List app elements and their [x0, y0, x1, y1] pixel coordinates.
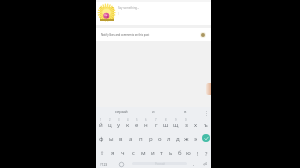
button[interactable]: ю [184, 145, 193, 159]
staticText: й [99, 121, 103, 129]
button[interactable]: 5 [132, 117, 141, 131]
button[interactable]: р [146, 131, 155, 145]
button[interactable]: о [155, 131, 164, 145]
staticText: п [139, 135, 143, 143]
staticText: т [160, 149, 163, 157]
staticText: о [158, 135, 162, 143]
staticText: ! [197, 150, 199, 157]
staticText: ?123 [100, 162, 108, 167]
button[interactable]: ъ [201, 117, 211, 131]
button[interactable]: 1 [96, 117, 105, 131]
button[interactable]: 4 [123, 117, 132, 131]
staticText: ж [184, 135, 189, 143]
button[interactable]: с [128, 145, 138, 159]
button[interactable]: ы [106, 131, 116, 145]
staticText: у [117, 121, 121, 129]
staticText: ц [108, 121, 112, 129]
staticText: Say something... [118, 6, 140, 10]
staticText: е [135, 121, 139, 129]
button[interactable]: п [136, 131, 146, 145]
button[interactable]: . [188, 159, 199, 168]
button[interactable]: ⇧ [96, 145, 108, 159]
button[interactable]: Say something... [96, 2, 211, 25]
button[interactable]: ?123 [96, 159, 111, 168]
button[interactable]: м [138, 145, 148, 159]
button[interactable]: д [173, 131, 182, 145]
staticText: Notify likes and comments on this post [101, 33, 150, 37]
button[interactable]: More options [203, 109, 210, 116]
staticText: . [193, 161, 195, 168]
staticText: э [194, 135, 197, 143]
button[interactable]: 0 [181, 117, 191, 131]
staticText: г [155, 121, 158, 129]
staticText: ъ [204, 121, 208, 129]
staticText: к [126, 121, 130, 129]
button[interactable]: ж [182, 131, 191, 145]
staticText: 5 [136, 118, 138, 122]
staticText: ф [99, 135, 104, 143]
staticText: 7 [155, 118, 157, 122]
button[interactable]: серый [115, 109, 128, 115]
staticText: р [149, 135, 153, 143]
button[interactable]: и [152, 109, 155, 115]
button[interactable]: я [108, 145, 118, 159]
staticText: з [185, 121, 188, 129]
staticText: л [167, 135, 171, 143]
staticText: ю [186, 149, 191, 157]
button[interactable]: а [126, 131, 136, 145]
staticText: 9 [175, 118, 177, 122]
button[interactable]: в [184, 109, 187, 115]
staticText: 2 [109, 118, 111, 122]
staticText: 4 [127, 118, 129, 122]
staticText: 0 [185, 118, 187, 122]
staticText: щ [173, 121, 179, 129]
button[interactable]: ч [118, 145, 128, 159]
staticText: и [151, 149, 155, 157]
staticText: н [144, 121, 148, 129]
staticText: 6 [145, 118, 147, 122]
button[interactable]: б [175, 145, 184, 159]
staticText: я [111, 149, 115, 157]
button[interactable]: и [148, 145, 157, 159]
button[interactable]: х [191, 117, 201, 131]
button[interactable]: ф [96, 131, 106, 145]
staticText: в [119, 135, 123, 143]
button[interactable]: 7 [151, 117, 161, 131]
button[interactable]: 8 [161, 117, 171, 131]
staticText: Русский [155, 162, 165, 165]
button[interactable]: Emoji [111, 159, 131, 168]
button[interactable]: Send [202, 134, 210, 142]
staticText: ⇧ [100, 150, 105, 156]
staticText: ы [109, 135, 114, 143]
staticText: а [129, 135, 133, 143]
staticText: ⋮ [204, 110, 209, 116]
button[interactable]: Space [132, 162, 187, 165]
button[interactable]: Notify likes and comments on this post [96, 28, 211, 41]
staticText: ь [169, 149, 173, 157]
staticText: ч [121, 149, 125, 157]
button[interactable]: 9 [171, 117, 181, 131]
staticText: 1 [100, 118, 102, 122]
button[interactable]: Enter [199, 159, 211, 168]
staticText: ⏎ [203, 161, 208, 167]
button[interactable]: в [116, 131, 126, 145]
button[interactable]: 2 [105, 117, 114, 131]
button[interactable]: 6 [141, 117, 151, 131]
staticText: х [194, 121, 198, 129]
staticText: 8 [165, 118, 167, 122]
other: Notification toggle [200, 32, 206, 38]
button[interactable]: 3 [114, 117, 123, 131]
staticText: с [132, 149, 135, 157]
staticText: б [178, 149, 182, 157]
staticText: 3 [118, 118, 120, 122]
staticText: м [141, 149, 146, 157]
button[interactable]: ? [202, 145, 211, 159]
staticText: д [176, 135, 180, 143]
button[interactable]: т [157, 145, 166, 159]
button[interactable]: ! [193, 145, 202, 159]
button[interactable]: э [191, 131, 200, 145]
staticText: ш [163, 121, 169, 129]
button[interactable]: л [164, 131, 173, 145]
button[interactable]: ь [166, 145, 175, 159]
staticText: ? [205, 150, 208, 157]
